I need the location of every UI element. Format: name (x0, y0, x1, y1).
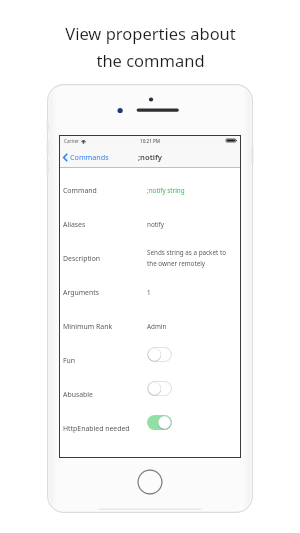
button[interactable]: Minimum Rank (59, 304, 241, 338)
staticText: ;notify (138, 152, 162, 162)
button[interactable]: Aliases (59, 202, 241, 236)
staticText: Fun (63, 356, 76, 365)
button[interactable]: Command (59, 168, 241, 202)
staticText: Arguments (63, 288, 100, 297)
staticText: Carrier (64, 138, 79, 144)
button[interactable]: Enabled toggle (147, 415, 172, 430)
button[interactable]: Fun (59, 338, 241, 372)
button[interactable]: Disabled toggle (147, 347, 172, 362)
staticText: 10:21 PM (140, 138, 160, 144)
button[interactable]: Description (59, 236, 241, 270)
staticText: Abusable (63, 390, 93, 399)
staticText: the owner remotely (147, 259, 206, 268)
staticText: ;notify string (147, 186, 185, 195)
staticText: notify (147, 220, 164, 229)
staticText: Commands (70, 152, 109, 162)
button[interactable]: HttpEnabled needed (59, 406, 241, 440)
staticText: View properties about (65, 22, 236, 44)
staticText: Command (63, 186, 97, 195)
staticText: HttpEnabled needed (63, 424, 130, 433)
button[interactable]: Disabled toggle (147, 381, 172, 396)
staticText: Aliases (63, 220, 86, 229)
staticText: Description (63, 254, 101, 263)
button[interactable]: Arguments (59, 270, 241, 304)
staticText: Sends string as a packet to (147, 248, 227, 257)
button[interactable]: Commands (59, 149, 115, 165)
staticText: Admin (147, 322, 167, 331)
button[interactable]: Abusable (59, 372, 241, 406)
staticText: the command (96, 49, 205, 71)
staticText: 1 (147, 288, 151, 297)
staticText: Minimum Rank (63, 322, 113, 331)
